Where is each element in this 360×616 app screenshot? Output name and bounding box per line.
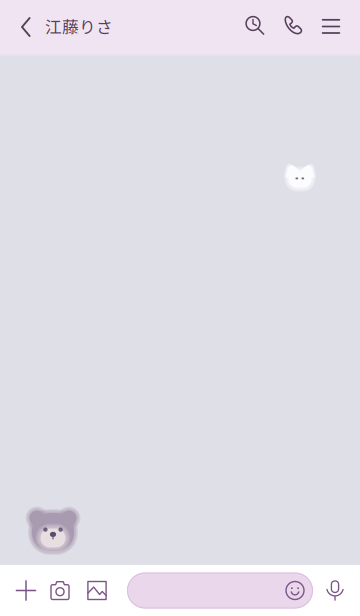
button[interactable]: Photo library <box>87 565 107 616</box>
button[interactable]: Menu <box>312 1 350 49</box>
button[interactable]: Emoji <box>283 573 307 608</box>
staticText: 江藤りさ <box>45 14 113 38</box>
button[interactable]: Back <box>15 1 37 49</box>
button[interactable]: Voice message <box>325 578 345 602</box>
button[interactable]: Call <box>274 1 312 49</box>
button[interactable]: Add <box>16 565 36 616</box>
button[interactable]: Camera <box>50 565 70 616</box>
button[interactable]: Search chat history <box>236 1 274 49</box>
